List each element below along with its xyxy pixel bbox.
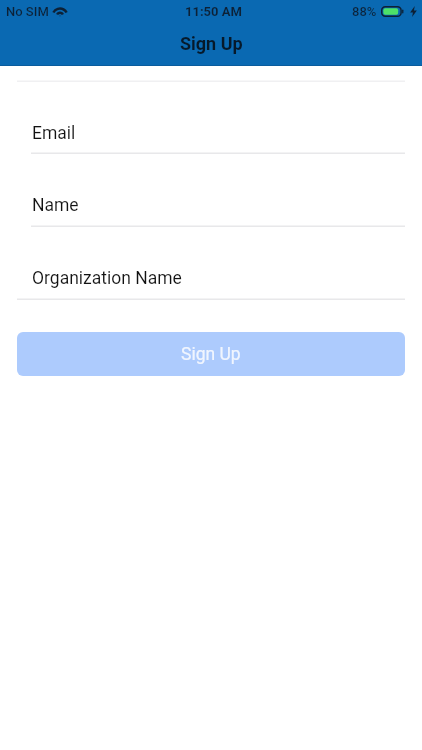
- button[interactable]: Organization Name: [32, 268, 182, 289]
- staticText: No SIM: [6, 4, 49, 19]
- other: Charging: [410, 6, 417, 17]
- staticText: Sign Up: [180, 33, 243, 54]
- button[interactable]: Sign Up: [17, 332, 405, 376]
- button[interactable]: Name: [32, 195, 79, 216]
- staticText: Sign Up: [181, 344, 241, 365]
- other: Wi-Fi: [52, 5, 68, 18]
- staticText: 88%: [352, 4, 377, 19]
- staticText: 11:50 AM: [185, 4, 242, 19]
- other: Battery 88 percent: [381, 6, 407, 17]
- button[interactable]: Email: [32, 123, 76, 144]
